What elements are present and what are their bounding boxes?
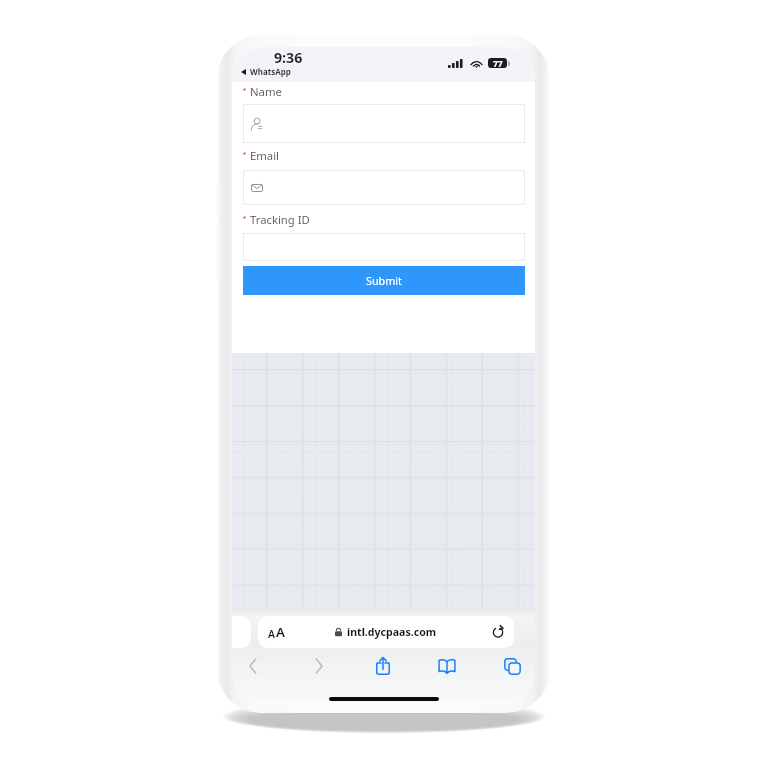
- button[interactable]: A: [258, 616, 514, 648]
- button[interactable]: Back: [237, 653, 269, 679]
- button[interactable]: Reload page: [490, 624, 506, 640]
- button[interactable]: [243, 233, 525, 261]
- staticText: WhatsApp: [250, 66, 291, 77]
- staticText: A: [268, 627, 275, 641]
- staticText: 77: [493, 58, 503, 68]
- button[interactable]: Submit: [243, 266, 525, 295]
- staticText: intl.dycpaas.com: [347, 625, 437, 639]
- button[interactable]: [243, 170, 525, 205]
- button[interactable]: [243, 104, 525, 143]
- staticText: Submit: [366, 273, 403, 288]
- button[interactable]: Tabs: [496, 653, 528, 679]
- button[interactable]: Bookmarks: [431, 653, 463, 679]
- staticText: Tracking ID: [250, 212, 310, 227]
- staticText: A: [276, 623, 285, 641]
- button[interactable]: Share: [367, 653, 399, 679]
- staticText: Name: [250, 84, 282, 99]
- button[interactable]: Forward: [303, 653, 335, 679]
- staticText: Email: [250, 148, 280, 163]
- staticText: 9:36: [274, 48, 303, 67]
